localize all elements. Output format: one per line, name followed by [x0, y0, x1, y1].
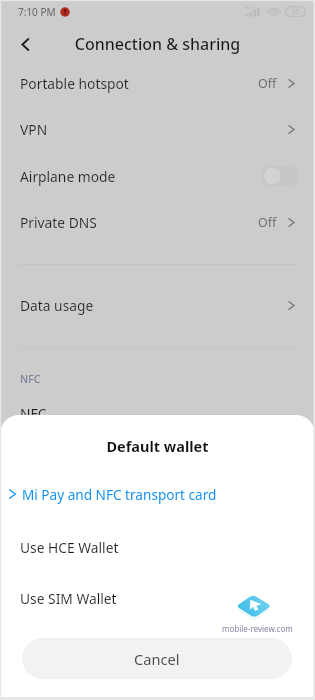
button[interactable]: Use SIM Wallet [0, 576, 315, 620]
staticText: Use HCE Wallet [20, 538, 119, 557]
staticText: Cancel [134, 649, 180, 669]
staticText: mobile-review.com [222, 623, 293, 634]
staticText: VPN [20, 120, 48, 139]
button[interactable]: Mi Pay and NFC transport card [0, 472, 315, 516]
button[interactable]: Data usage [0, 282, 315, 328]
staticText: Portable hotspot [20, 74, 129, 93]
staticText: 85 [292, 7, 300, 16]
staticText: Airplane mode [20, 167, 116, 186]
button[interactable]: Back [10, 29, 41, 60]
staticText: NFC [20, 372, 41, 386]
button[interactable]: VPN [0, 106, 315, 152]
button[interactable]: Toggle Airplane mode [262, 166, 298, 186]
staticText: NFC [20, 404, 47, 423]
staticText: Mi Pay and NFC transport card [22, 485, 217, 504]
button[interactable]: Private DNS [0, 199, 315, 245]
staticText: Use SIM Wallet [20, 589, 117, 608]
button[interactable]: Airplane mode [0, 153, 315, 199]
button[interactable]: Use HCE Wallet [0, 525, 315, 569]
staticText: Private DNS [20, 213, 97, 232]
staticText: 7:10 PM [18, 5, 56, 19]
staticText: Connection & sharing [0, 33, 315, 55]
staticText: Data usage [20, 296, 94, 315]
staticText: Off [258, 75, 277, 92]
staticText: Default wallet [0, 436, 315, 456]
button[interactable]: Cancel [22, 638, 292, 679]
button[interactable]: Portable hotspot [0, 60, 315, 106]
staticText: Off [258, 214, 277, 231]
